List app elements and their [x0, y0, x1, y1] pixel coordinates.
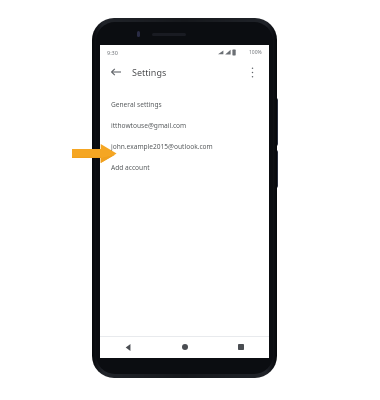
button[interactable]: itthowtouse@gmail.com	[100, 115, 269, 136]
button[interactable]: Recent apps	[213, 336, 269, 358]
staticText: 100%	[249, 49, 262, 56]
button[interactable]: Add account	[100, 157, 269, 178]
staticText: 9:30	[107, 49, 118, 56]
button[interactable]: General settings	[100, 94, 269, 115]
button[interactable]: More options	[244, 64, 260, 80]
staticText: john.example2015@outlook.com	[111, 142, 213, 151]
button[interactable]: Back	[108, 64, 124, 80]
button[interactable]: Home	[157, 336, 213, 358]
staticText: Add account	[111, 163, 150, 172]
staticText: General settings	[111, 100, 162, 109]
staticText: Settings	[132, 66, 167, 78]
button[interactable]: john.example2015@outlook.com	[100, 136, 269, 157]
staticText: itthowtouse@gmail.com	[111, 121, 187, 130]
button[interactable]: Back	[100, 336, 157, 358]
